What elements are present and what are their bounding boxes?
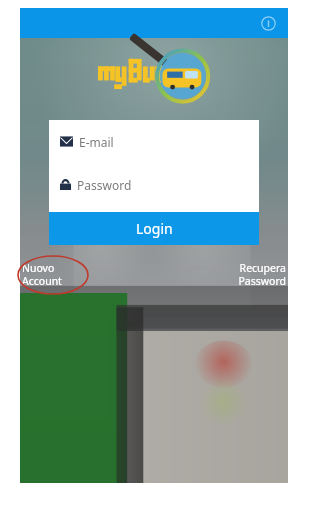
button[interactable]: Recupera Password — [238, 261, 286, 288]
button[interactable]: Info — [256, 11, 280, 35]
staticText: Nuovo Account — [22, 261, 62, 288]
button[interactable]: E-mail — [49, 120, 259, 163]
staticText: Login — [136, 219, 173, 238]
staticText: E-mail — [79, 134, 114, 150]
staticText: Recupera Password — [238, 261, 286, 288]
button[interactable]: Nuovo Account — [22, 261, 62, 288]
staticText: Password — [77, 177, 132, 193]
button[interactable]: Password — [49, 163, 259, 206]
button[interactable]: Login — [49, 212, 259, 245]
